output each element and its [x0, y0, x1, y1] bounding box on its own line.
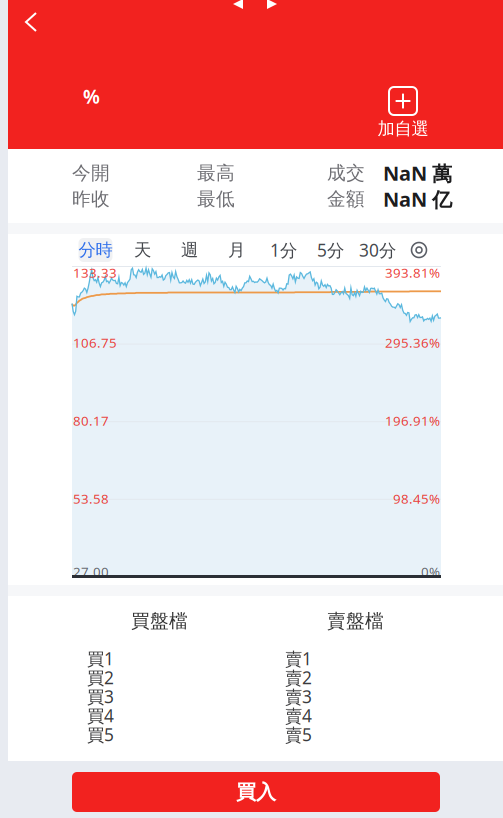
button[interactable]: 月	[213, 237, 260, 263]
staticText: 週	[181, 239, 198, 261]
staticText: 金額	[327, 187, 365, 210]
staticText: 133.33	[73, 264, 117, 281]
staticText: 天	[134, 239, 151, 261]
staticText: 80.17	[73, 412, 109, 429]
button[interactable]: Back	[14, 7, 48, 37]
staticText: 買盤檔	[131, 609, 188, 632]
staticText: 賣1	[285, 647, 312, 670]
staticText: 買3	[87, 685, 114, 708]
staticText: 53.58	[73, 490, 109, 507]
button[interactable]: 5分	[307, 237, 354, 263]
button[interactable]: 分時	[72, 237, 119, 263]
button[interactable]: 1分	[260, 237, 307, 263]
staticText: 賣5	[285, 723, 312, 746]
staticText: 0%	[421, 563, 440, 580]
staticText: 月	[228, 239, 245, 261]
staticText: 196.91%	[385, 412, 440, 429]
staticText: 分時	[78, 239, 112, 261]
staticText: 最低	[197, 187, 235, 210]
staticText: NaN 亿	[383, 186, 452, 212]
staticText: 買4	[87, 704, 114, 727]
staticText: 賣盤檔	[327, 609, 384, 632]
button[interactable]: 30分	[354, 237, 401, 263]
staticText: 賣4	[285, 704, 312, 727]
staticText: 98.45%	[393, 490, 440, 507]
staticText: %	[83, 84, 100, 109]
staticText: 賣2	[285, 666, 312, 689]
staticText: 買入	[236, 780, 276, 804]
staticText: 1分	[270, 238, 297, 261]
staticText: 買5	[87, 723, 114, 746]
staticText: 買1	[87, 647, 114, 670]
staticText: NaN 萬	[383, 160, 452, 186]
button[interactable]: 天	[119, 237, 166, 263]
staticText: 30分	[359, 238, 396, 261]
staticText: 393.81%	[385, 264, 440, 281]
staticText: 昨收	[72, 187, 110, 210]
staticText: 106.75	[73, 334, 117, 351]
button[interactable]: 加自選	[373, 87, 433, 139]
staticText: 27.00	[73, 563, 109, 580]
staticText: 成交	[327, 161, 365, 184]
staticText: 買2	[87, 666, 114, 689]
staticText: 加自選	[377, 118, 428, 139]
staticText: 今開	[72, 161, 110, 184]
staticText: 賣3	[285, 685, 312, 708]
button[interactable]: Chart settings	[401, 237, 437, 263]
staticText: 最高	[197, 161, 235, 184]
button[interactable]: 週	[166, 237, 213, 263]
staticText: 5分	[317, 238, 344, 261]
staticText: 295.36%	[385, 334, 440, 351]
button[interactable]: 買入	[8, 772, 503, 812]
